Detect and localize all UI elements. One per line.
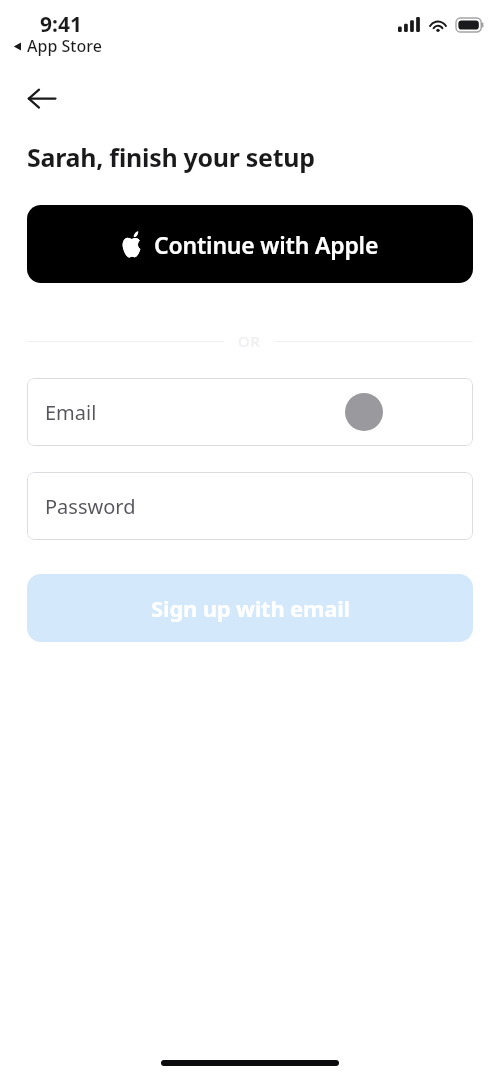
staticText: Continue with Apple (154, 229, 379, 260)
staticText: Email (45, 399, 97, 426)
button[interactable]: Back (18, 74, 66, 122)
button[interactable]: Continue with Apple (27, 205, 473, 283)
button[interactable]: Email (27, 378, 473, 446)
staticText: OR (238, 331, 261, 351)
button[interactable]: Sign up with email (27, 574, 473, 642)
staticText: 9:41 (40, 10, 82, 39)
staticText: Sarah, finish your setup (27, 140, 315, 174)
staticText: App Store (27, 35, 102, 57)
staticText: Sign up with email (151, 593, 350, 623)
staticText: Password (45, 493, 136, 520)
button[interactable]: Password (27, 472, 473, 540)
